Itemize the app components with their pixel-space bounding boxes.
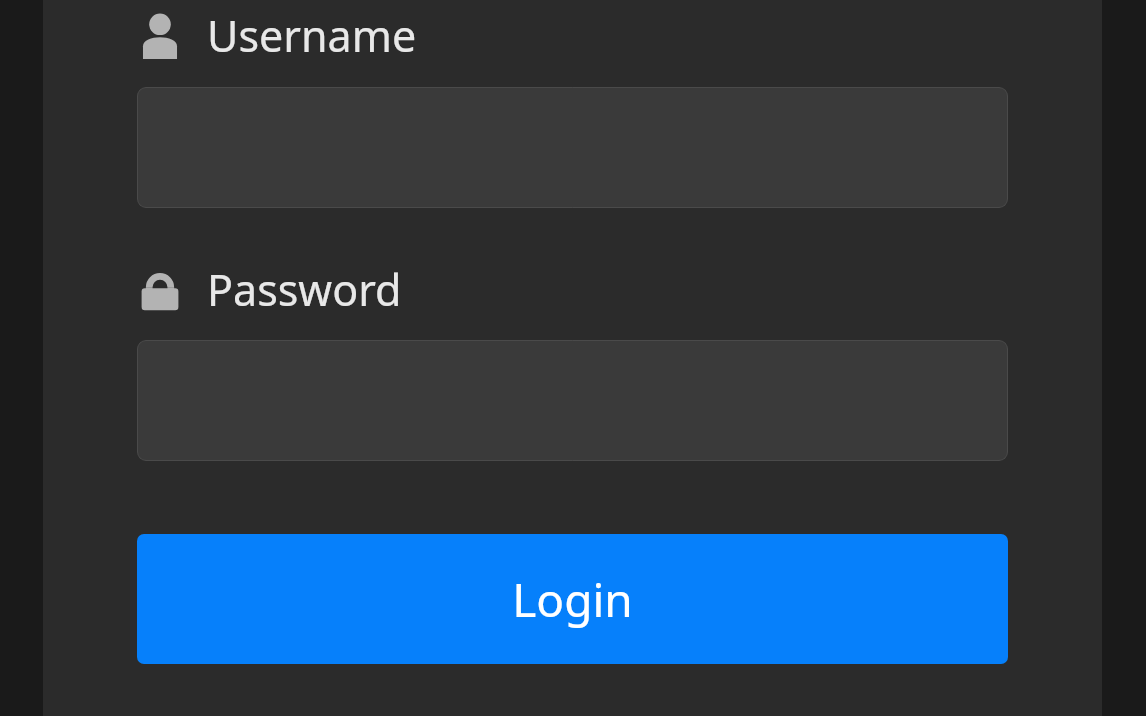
button[interactable]: Login [137,534,1008,664]
other: Username [137,13,183,59]
staticText: Password [207,260,402,319]
staticText: Username [207,6,417,65]
other: Password [137,267,183,313]
staticText: Login [512,568,633,631]
